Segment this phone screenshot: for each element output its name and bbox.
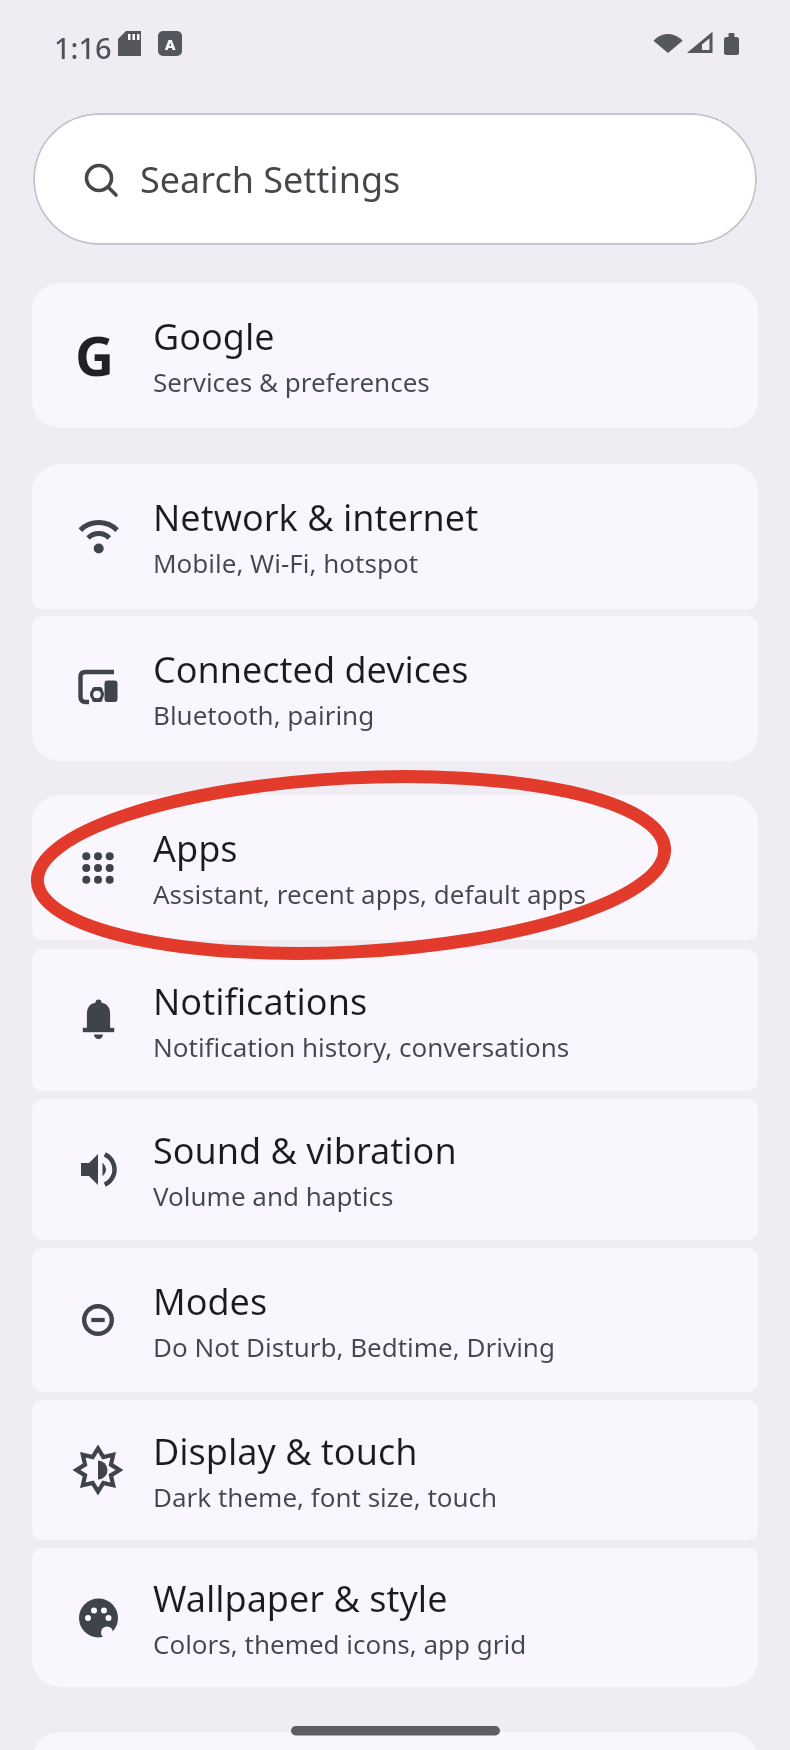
staticText: Notifications (153, 977, 368, 1026)
staticText: Modes (153, 1277, 268, 1326)
staticText: Volume and haptics (153, 1178, 394, 1213)
staticText: G (75, 318, 115, 392)
button[interactable]: Connected devices (32, 616, 758, 761)
staticText: Do Not Disturb, Bedtime, Driving (153, 1329, 555, 1364)
button[interactable]: Notifications (32, 949, 758, 1091)
button[interactable] (32, 1732, 758, 1750)
staticText: Sound & vibration (153, 1126, 457, 1175)
staticText: Mobile, Wi-Fi, hotspot (153, 545, 419, 580)
staticText: A (165, 34, 176, 54)
staticText: Bluetooth, pairing (153, 697, 375, 732)
staticText: Network & internet (153, 493, 479, 542)
button[interactable]: Sound & vibration (32, 1099, 758, 1240)
staticText: Notification history, conversations (153, 1029, 570, 1064)
staticText: Colors, themed icons, app grid (153, 1626, 527, 1661)
staticText: Google (153, 312, 275, 361)
button[interactable]: Wallpaper & style (32, 1548, 758, 1687)
button[interactable]: Display & touch (32, 1400, 758, 1540)
button[interactable]: Search Settings (33, 113, 757, 245)
button[interactable]: Network & internet (32, 464, 758, 609)
button[interactable]: Apps (32, 795, 758, 940)
staticText: Wallpaper & style (153, 1574, 448, 1623)
staticText: Dark theme, font size, touch (153, 1479, 498, 1514)
staticText: Services & preferences (153, 364, 430, 399)
button[interactable]: Modes (32, 1248, 758, 1392)
staticText: Display & touch (153, 1427, 418, 1476)
staticText: Assistant, recent apps, default apps (153, 876, 586, 911)
staticText: Apps (153, 824, 238, 873)
staticText: Search Settings (140, 155, 401, 204)
staticText: 1:16 (54, 28, 112, 67)
button[interactable]: Google (32, 283, 758, 428)
staticText: Connected devices (153, 645, 469, 694)
